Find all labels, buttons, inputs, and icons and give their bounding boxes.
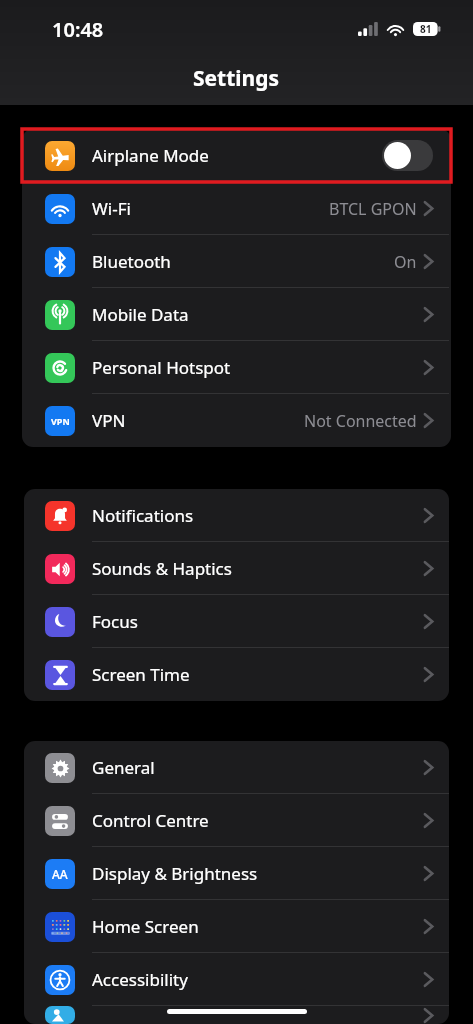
staticText: Focus xyxy=(92,610,138,633)
staticText: Settings xyxy=(193,64,280,93)
staticText: Not Connected xyxy=(304,410,417,432)
button[interactable]: Notifications xyxy=(24,489,449,542)
staticText: Home Screen xyxy=(92,915,199,938)
staticText: Personal Hotspot xyxy=(92,356,231,379)
button[interactable]: Personal Hotspot xyxy=(24,341,449,394)
button[interactable]: Home Screen xyxy=(24,900,449,953)
staticText: VPN xyxy=(51,415,70,427)
button[interactable]: Bluetooth xyxy=(24,235,449,288)
staticText: Mobile Data xyxy=(92,303,189,326)
button[interactable]: VPN xyxy=(24,394,449,447)
button[interactable]: Control Centre xyxy=(24,794,449,847)
button[interactable]: Airplane Mode xyxy=(24,129,449,182)
button[interactable]: Screen Time xyxy=(24,648,449,701)
button[interactable]: AA xyxy=(24,847,449,900)
staticText: 81 xyxy=(420,22,432,36)
button[interactable] xyxy=(24,1006,449,1024)
staticText: BTCL GPON xyxy=(329,198,417,220)
staticText: Control Centre xyxy=(92,809,209,832)
staticText: Screen Time xyxy=(92,663,190,686)
staticText: Display & Brightness xyxy=(92,862,258,885)
staticText: Bluetooth xyxy=(92,250,171,273)
button[interactable]: Mobile Data xyxy=(24,288,449,341)
staticText: VPN xyxy=(92,409,126,432)
staticText: Accessibility xyxy=(92,968,188,991)
button[interactable]: Sounds & Haptics xyxy=(24,542,449,595)
button[interactable]: Accessibility xyxy=(24,953,449,1006)
staticText: Notifications xyxy=(92,504,194,527)
staticText: 10:48 xyxy=(52,16,104,43)
button[interactable]: Focus xyxy=(24,595,449,648)
button[interactable]: Airplane Mode toggle, off xyxy=(382,140,433,171)
staticText: General xyxy=(92,756,155,779)
button[interactable]: Wi-Fi xyxy=(24,182,449,235)
staticText: Wi-Fi xyxy=(92,197,131,220)
button[interactable]: General xyxy=(24,741,449,794)
staticText: Airplane Mode xyxy=(92,144,209,167)
staticText: AA xyxy=(52,866,68,882)
staticText: On xyxy=(394,251,417,273)
staticText: Sounds & Haptics xyxy=(92,557,232,580)
